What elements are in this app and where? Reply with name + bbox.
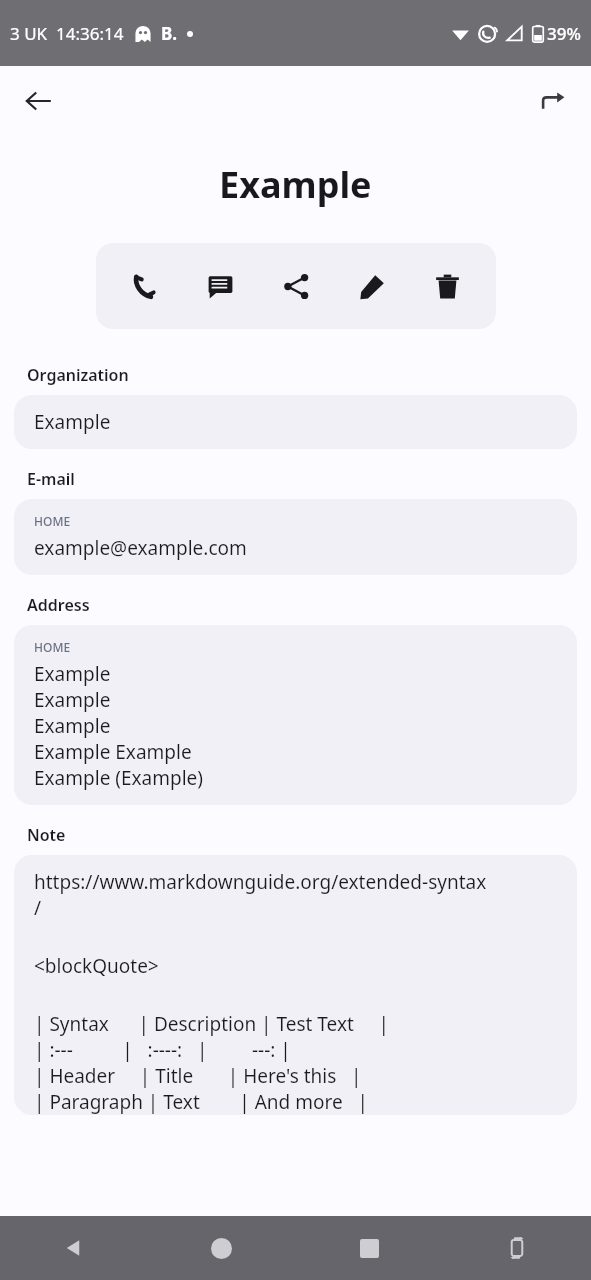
button[interactable]: HOME (14, 499, 577, 575)
button[interactable]: Recent apps (295, 1216, 443, 1280)
staticText: B. (161, 22, 177, 45)
button[interactable]: Message (193, 259, 247, 313)
staticText: Organization (27, 364, 129, 386)
button[interactable]: Home (147, 1216, 295, 1280)
staticText: 3 UK 14:36:14 (10, 22, 124, 45)
button[interactable]: Example (14, 395, 577, 449)
staticText: https://www.markdownguide.org/extended-s… (34, 869, 487, 895)
staticText: Example (34, 713, 111, 739)
staticText: | Header | Title | Here's this | (34, 1063, 362, 1089)
staticText: | Syntax | Description | Test Text | (34, 1011, 389, 1037)
staticText: HOME (34, 639, 71, 655)
staticText: 39% (547, 22, 581, 45)
staticText: | :--- | :----: | ---: | (34, 1037, 291, 1063)
staticText: example@example.com (34, 535, 247, 561)
staticText: / (34, 895, 42, 921)
button[interactable]: HOME (14, 625, 577, 805)
button[interactable]: Delete (420, 259, 474, 313)
staticText: Example (219, 160, 372, 209)
button[interactable]: https://www.markdownguide.org/extended-s… (14, 855, 577, 1115)
staticText: HOME (34, 513, 71, 529)
button[interactable]: Edit (345, 259, 399, 313)
button[interactable]: Call (118, 259, 172, 313)
staticText: Example Example (34, 739, 192, 765)
staticText: Note (27, 824, 66, 846)
staticText: Example (34, 687, 111, 713)
staticText: Example (34, 661, 111, 687)
button[interactable]: Rotate screen (443, 1216, 591, 1280)
staticText: <blockQuote> (34, 953, 159, 979)
button[interactable]: Share contact (529, 77, 577, 125)
staticText: Address (27, 594, 90, 616)
button[interactable]: Back (0, 1216, 147, 1280)
button[interactable]: Back (14, 77, 62, 125)
button[interactable]: Share (269, 259, 323, 313)
staticText: Example (Example) (34, 765, 204, 791)
staticText: Example (34, 409, 111, 435)
staticText: | Paragraph | Text | And more | (34, 1089, 368, 1115)
staticText: E-mail (27, 468, 75, 490)
